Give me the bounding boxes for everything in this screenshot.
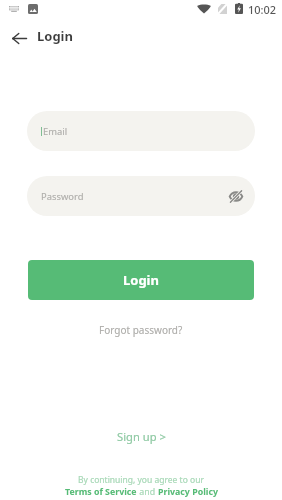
button[interactable]: Terms of Service xyxy=(65,486,137,498)
staticText: 10:02 xyxy=(248,2,277,17)
staticText: Password xyxy=(41,190,84,203)
staticText: Terms of Service xyxy=(65,486,137,498)
staticText: Email xyxy=(43,125,68,138)
button[interactable]: Back xyxy=(7,26,31,50)
button[interactable]: Privacy Policy xyxy=(158,486,218,498)
staticText: Sign up > xyxy=(117,429,166,444)
staticText: Login xyxy=(37,27,73,45)
staticText: and xyxy=(137,486,158,498)
button[interactable]: Forgot password? xyxy=(91,317,191,343)
button[interactable]: Login xyxy=(28,260,254,300)
staticText: Privacy Policy xyxy=(158,486,218,498)
button[interactable]: Password xyxy=(27,176,255,216)
staticText: Forgot password? xyxy=(99,323,183,337)
button[interactable]: Sign up > xyxy=(107,423,176,450)
button[interactable]: Show password xyxy=(226,186,246,206)
button[interactable]: Email xyxy=(27,111,255,151)
staticText: By continuing, you agree to our xyxy=(78,474,204,486)
staticText: Login xyxy=(123,271,159,289)
